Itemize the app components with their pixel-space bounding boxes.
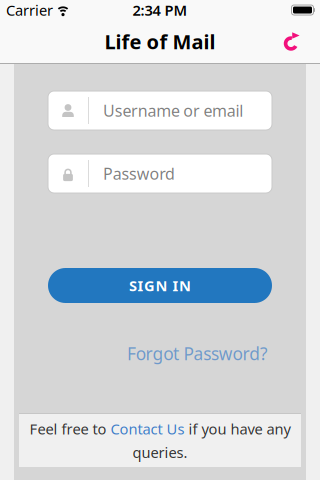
staticText: queries. <box>132 442 187 462</box>
staticText: SIGN IN <box>129 276 191 295</box>
button[interactable]: Password <box>48 154 272 193</box>
button[interactable]: Refresh <box>278 26 320 56</box>
button[interactable]: Contact Us <box>110 419 184 438</box>
staticText: Feel free to <box>29 419 110 438</box>
button[interactable]: Forgot Password? <box>127 342 272 365</box>
staticText: Contact Us <box>110 419 184 438</box>
button[interactable]: Username or email <box>48 91 272 130</box>
staticText: Life of Mail <box>104 28 215 55</box>
staticText: if you have any <box>184 419 290 438</box>
staticText: Username or email <box>103 100 243 121</box>
staticText: Password <box>103 163 175 184</box>
staticText: Forgot Password? <box>127 342 268 365</box>
staticText: 2:34 PM <box>132 0 187 20</box>
button[interactable]: SIGN IN <box>48 268 272 303</box>
staticText: Carrier <box>6 0 53 20</box>
